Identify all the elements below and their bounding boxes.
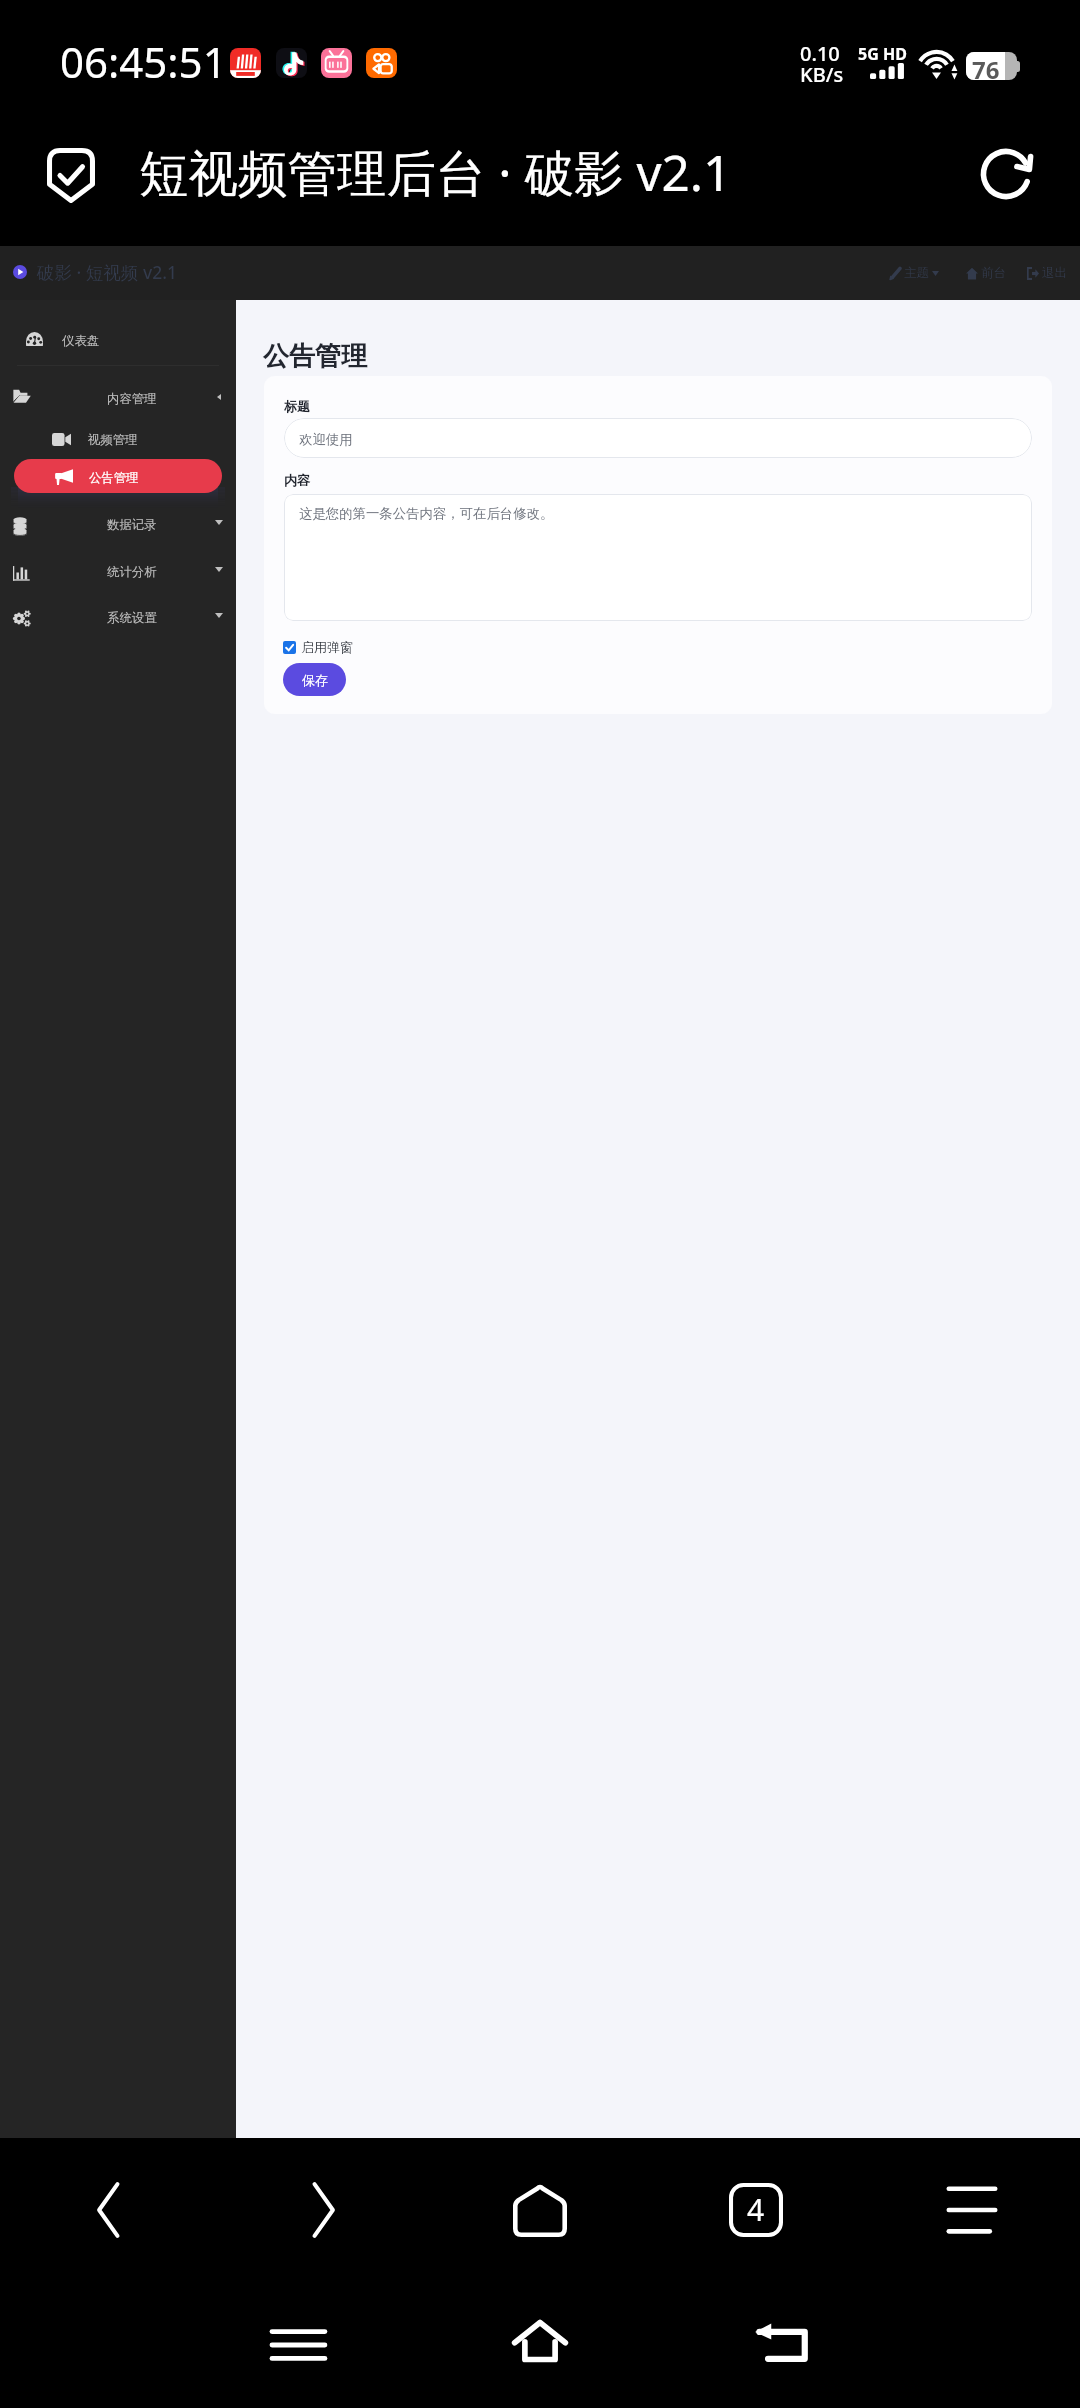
staticText: 公告管理 [263,340,367,373]
staticText: 标题 [284,398,310,414]
button[interactable]: Home [480,2296,600,2386]
staticText: 短视频管理后台 · 破影 v2.1 [139,138,732,206]
button[interactable]: 欢迎使用 [284,418,1032,458]
staticText: 保存 [302,672,328,688]
staticText: 启用弹窗 [301,639,353,655]
staticText: 退出 [1042,265,1068,281]
staticText: 主题 [904,265,930,281]
button[interactable]: 内容管理 [0,385,236,413]
staticText: 系统设置 [107,610,157,626]
staticText: 这是您的第一条公告内容，可在后台修改。 [299,505,554,522]
staticText: KB/s [800,61,844,88]
staticText: 仪表盘 [62,333,100,349]
staticText: 欢迎使用 [299,431,353,448]
button[interactable]: Home [492,2166,588,2254]
staticText: 内容 [284,472,310,488]
button[interactable]: 启用弹窗 [283,638,353,656]
staticText: 统计分析 [107,564,157,580]
button[interactable]: 仪表盘 [0,326,236,354]
button[interactable]: Tabs [708,2166,804,2254]
button[interactable]: Refresh [974,142,1037,205]
button[interactable]: Forward [273,2166,369,2254]
staticText: 前台 [981,265,1007,281]
staticText: 公告管理 [89,470,139,486]
staticText: 0.10 [800,40,840,67]
button[interactable]: 系统设置 [0,604,236,632]
button[interactable]: 统计分析 [0,558,236,586]
button[interactable]: 前台 [966,265,1007,281]
button[interactable]: 退出 [1027,265,1068,281]
button[interactable]: 视频管理 [0,425,236,453]
button[interactable]: Menu [924,2166,1020,2254]
button[interactable]: 破影 · 短视频 v2.1 [13,260,177,284]
button[interactable]: 主题 [889,265,939,281]
button[interactable]: Back [63,2166,159,2254]
button[interactable]: 数据记录 [0,511,236,539]
staticText: 视频管理 [88,432,138,448]
button[interactable]: Recents [239,2300,359,2390]
staticText: 5G HD [858,43,907,65]
button[interactable]: 公告管理 [14,459,222,493]
button[interactable]: 保存 [283,663,346,696]
staticText: 4 [747,2189,765,2230]
button[interactable]: 这是您的第一条公告内容，可在后台修改。 [284,494,1032,621]
staticText: 破影 · 短视频 v2.1 [37,260,177,284]
staticText: 数据记录 [107,517,157,533]
staticText: 内容管理 [107,391,157,407]
button[interactable]: Secure [40,135,102,215]
staticText: 76 [972,53,1000,80]
staticText: 06:45:51 [60,33,227,90]
button[interactable]: Back [721,2297,841,2387]
